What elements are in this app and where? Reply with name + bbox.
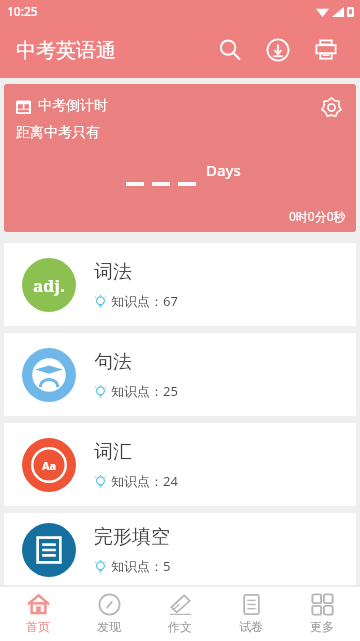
button[interactable]: Aa — [4, 423, 356, 506]
staticText: 词法 — [94, 260, 132, 284]
staticText: 中考英语通 — [16, 38, 116, 63]
staticText: 知识点：24 — [111, 472, 178, 490]
staticText: 知识点：5 — [111, 557, 171, 575]
button[interactable]: 首页 — [5, 586, 71, 641]
staticText: 完形填空 — [94, 525, 170, 549]
staticText: 更多 — [310, 619, 334, 634]
staticText: 知识点：25 — [111, 382, 178, 400]
staticText: 发现 — [97, 619, 121, 634]
staticText: 首页 — [26, 619, 50, 634]
button[interactable]: Download — [254, 26, 302, 74]
button[interactable]: 试卷 — [218, 586, 284, 641]
staticText: adj. — [33, 274, 66, 297]
button[interactable]: 中考倒计时 — [4, 84, 356, 232]
button[interactable]: adj. — [4, 243, 356, 326]
button[interactable]: Print — [302, 26, 350, 74]
staticText: 词汇 — [94, 440, 132, 464]
button[interactable]: 作文 — [147, 586, 213, 641]
staticText: Aa — [42, 458, 57, 473]
staticText: 试卷 — [239, 619, 263, 634]
button[interactable]: Search — [206, 26, 254, 74]
staticText: 知识点：67 — [111, 292, 178, 310]
staticText: 10:25 — [7, 3, 38, 19]
button[interactable]: 完形填空 — [4, 513, 356, 586]
staticText: 句法 — [94, 350, 132, 374]
staticText: 中考倒计时 — [38, 97, 108, 115]
button[interactable]: 更多 — [289, 586, 355, 641]
button[interactable]: 发现 — [76, 586, 142, 641]
staticText: 0时0分0秒 — [289, 208, 346, 224]
button[interactable]: Settings — [314, 90, 348, 124]
staticText: 作文 — [168, 619, 192, 634]
button[interactable]: 句法 — [4, 333, 356, 416]
staticText: Days — [206, 160, 241, 180]
staticText: 距离中考只有 — [16, 124, 100, 142]
